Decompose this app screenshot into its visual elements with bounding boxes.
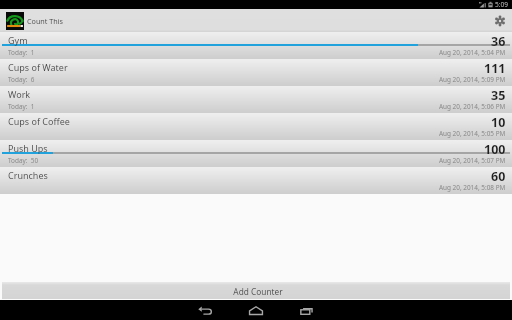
button[interactable]: Recents [287,300,327,320]
staticText: Today: 1 [8,102,35,111]
staticText: 100 [484,141,506,158]
staticText: Cups of Coffee [8,115,70,127]
staticText: Count This [27,16,63,26]
staticText: Aug 20, 2014, 5:07 PM [439,156,506,165]
staticText: Add Counter [233,286,283,297]
staticText: Today: 6 [8,75,35,84]
staticText: 36 [491,33,506,50]
staticText: Aug 20, 2014, 5:05 PM [439,129,506,138]
button[interactable]: Add Counter [2,282,510,299]
button[interactable]: Crunches [0,167,512,194]
button[interactable]: Cups of Water [0,59,512,86]
button[interactable]: Push Ups [0,140,512,167]
staticText: Gym [8,34,28,46]
staticText: Push Ups [8,142,48,154]
staticText: Work [8,88,31,100]
staticText: 35 [491,87,506,104]
button[interactable]: Back [185,300,225,320]
staticText: Today: 1 [8,48,35,57]
staticText: 111 [484,60,506,77]
button[interactable]: Work [0,86,512,113]
staticText: 60 [491,168,506,185]
staticText: 10 [491,114,506,131]
button[interactable]: Home [236,300,276,320]
staticText: Aug 20, 2014, 5:04 PM [439,48,506,57]
staticText: 5:09 [495,0,509,9]
button[interactable]: Cups of Coffee [0,113,512,140]
staticText: Cups of Water [8,61,68,73]
staticText: Crunches [8,169,48,181]
staticText: Aug 20, 2014, 5:08 PM [439,183,506,192]
staticText: Aug 20, 2014, 5:06 PM [439,102,506,111]
button[interactable]: Gym [0,32,512,59]
staticText: Today: 50 [8,156,39,165]
button[interactable]: Settings [488,9,512,32]
staticText: Aug 20, 2014, 5:09 PM [439,75,506,84]
